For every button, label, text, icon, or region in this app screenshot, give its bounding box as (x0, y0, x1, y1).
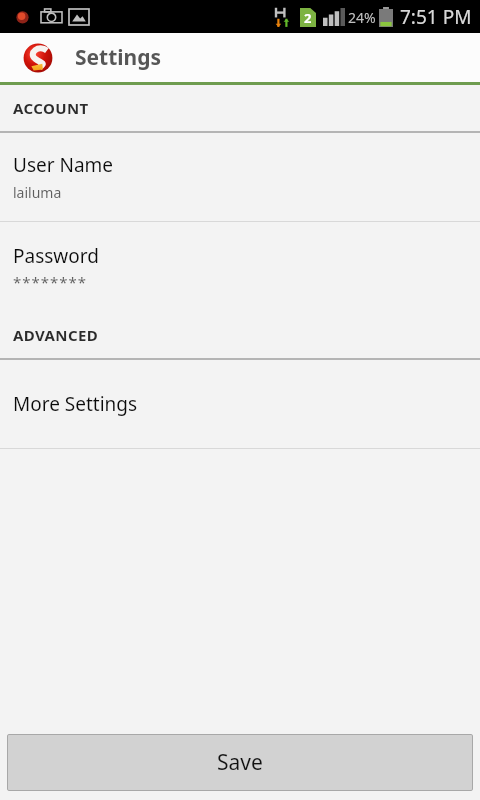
button[interactable]: Password (0, 222, 480, 312)
staticText: lailuma (13, 183, 62, 202)
staticText: Password (13, 243, 99, 269)
button[interactable]: Save (7, 734, 473, 791)
staticText: 24% (348, 8, 376, 27)
button[interactable]: User Name (0, 133, 480, 221)
staticText: Save (217, 748, 263, 777)
staticText: 7:51 PM (400, 4, 472, 30)
staticText: User Name (13, 152, 114, 178)
staticText: ******** (13, 272, 88, 292)
staticText: More Settings (13, 391, 138, 417)
other: App logo (22, 42, 54, 74)
staticText: 2 (304, 9, 312, 27)
staticText: ACCOUNT (13, 98, 89, 118)
staticText: Settings (75, 43, 162, 72)
button[interactable]: More Settings (0, 360, 480, 448)
staticText: ADVANCED (13, 325, 99, 345)
